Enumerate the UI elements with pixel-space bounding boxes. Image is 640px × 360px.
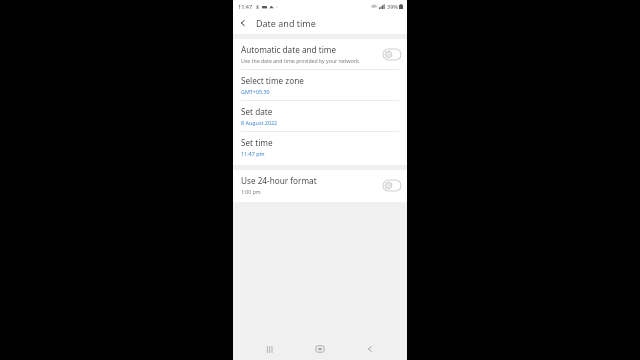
button[interactable]: Use 24-hour format bbox=[233, 170, 407, 200]
staticText: Automatic date and time bbox=[241, 44, 337, 55]
staticText: Select time zone bbox=[241, 75, 304, 86]
staticText: GMT+05:30 bbox=[241, 88, 270, 95]
button[interactable]: Toggle off bbox=[383, 180, 401, 191]
button[interactable]: Toggle off bbox=[383, 49, 401, 60]
staticText: Date and time bbox=[256, 17, 316, 29]
staticText: 39% bbox=[387, 3, 398, 10]
staticText: 11:47 bbox=[238, 3, 253, 10]
staticText: Set time bbox=[241, 137, 273, 148]
button[interactable]: Select time zone bbox=[233, 70, 407, 100]
button[interactable]: Back bbox=[357, 339, 383, 359]
staticText: Set date bbox=[241, 106, 273, 117]
staticText: Use the date and time provided by your n… bbox=[241, 57, 361, 64]
button[interactable]: Automatic date and time bbox=[233, 39, 407, 69]
staticText: Use 24-hour format bbox=[241, 175, 317, 186]
button[interactable]: Set time bbox=[233, 132, 407, 162]
staticText: 8 August 2022 bbox=[241, 119, 278, 126]
button[interactable]: Back bbox=[233, 13, 253, 33]
button[interactable]: Recents bbox=[257, 339, 283, 359]
button[interactable]: Home bbox=[307, 339, 333, 359]
staticText: 11:47 pm bbox=[241, 150, 265, 157]
button[interactable]: Set date bbox=[233, 101, 407, 131]
staticText: 1:00 pm bbox=[241, 188, 261, 195]
